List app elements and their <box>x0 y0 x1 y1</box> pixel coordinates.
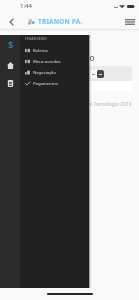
staticText: TRIANON PA. <box>38 17 83 26</box>
staticText: 1:44 <box>20 2 32 10</box>
staticText: Meu acordo <box>49 52 95 63</box>
button[interactable]: Boletos <box>20 45 89 56</box>
staticText: Meus acordos <box>33 59 61 65</box>
staticText: Negociação <box>33 70 56 76</box>
staticText: Pagamentos <box>33 81 58 87</box>
button[interactable]: Negociação <box>20 67 89 78</box>
button[interactable]: Back <box>0 12 22 31</box>
button[interactable]: Financeiro <box>0 36 20 52</box>
staticText: $ <box>8 38 14 51</box>
staticText: Boletos <box>33 48 48 54</box>
button[interactable]: Meus acordos <box>20 56 89 67</box>
staticText: by Assessoro Tecnologia 2019 <box>62 101 132 108</box>
staticText: FINANCEIRO <box>25 37 48 41</box>
button[interactable]: Pagamentos <box>20 78 89 89</box>
button[interactable]: Menu <box>120 12 139 31</box>
button[interactable]: Documentos <box>0 75 20 91</box>
button[interactable]: Alternar <box>90 70 104 78</box>
button[interactable]: Home <box>0 57 20 73</box>
